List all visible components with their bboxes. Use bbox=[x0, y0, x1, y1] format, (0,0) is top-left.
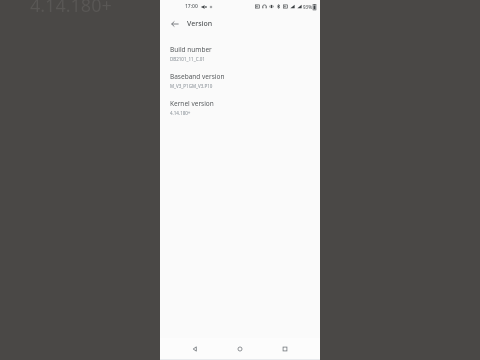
staticText: 17:00 bbox=[185, 3, 198, 10]
staticText: M_V3_P1GM_V3.P10 bbox=[170, 83, 213, 89]
button[interactable]: Build number bbox=[160, 40, 320, 67]
staticText: 4.14.180+ bbox=[170, 110, 191, 116]
staticText: DB2101_11_C.01 bbox=[170, 56, 205, 62]
button[interactable]: Kernel version bbox=[160, 94, 320, 121]
staticText: 93% bbox=[303, 4, 312, 10]
staticText: 4.14.180+ bbox=[30, 0, 112, 18]
button[interactable]: Home bbox=[230, 339, 250, 359]
staticText: Baseband version bbox=[170, 72, 225, 81]
button[interactable]: Baseband version bbox=[160, 67, 320, 94]
button[interactable]: Navigate up bbox=[168, 17, 182, 31]
button[interactable]: Recent apps bbox=[275, 339, 295, 359]
button[interactable]: Back bbox=[185, 339, 205, 359]
staticText: Build number bbox=[170, 45, 212, 54]
staticText: Kernel version bbox=[170, 99, 214, 108]
staticText: Version bbox=[187, 19, 213, 29]
